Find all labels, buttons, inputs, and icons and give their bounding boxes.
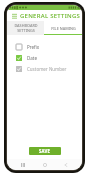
- staticText: FILE NAMING: [51, 26, 76, 31]
- staticText: DASHBOARD: [14, 23, 38, 28]
- staticText: SAVE: [39, 148, 51, 154]
- button[interactable]: Customer Number: [7, 63, 82, 74]
- button[interactable]: SAVE: [29, 147, 61, 155]
- staticText: SETTINGS: [17, 28, 35, 33]
- button[interactable]: Date: [7, 52, 82, 63]
- button[interactable]: FILE NAMING: [44, 21, 82, 35]
- button[interactable]: Menu: [10, 12, 18, 20]
- staticText: GENERAL SETTINGS: [20, 12, 81, 20]
- button[interactable]: Back: [61, 160, 71, 170]
- staticText: Prefix: [27, 44, 40, 50]
- staticText: Date: [27, 55, 37, 61]
- button[interactable]: Prefix: [7, 41, 82, 52]
- button[interactable]: Recent apps: [18, 160, 28, 170]
- button[interactable]: DASHBOARD: [7, 21, 44, 35]
- button[interactable]: Home: [40, 160, 50, 170]
- staticText: Customer Number: [27, 66, 67, 72]
